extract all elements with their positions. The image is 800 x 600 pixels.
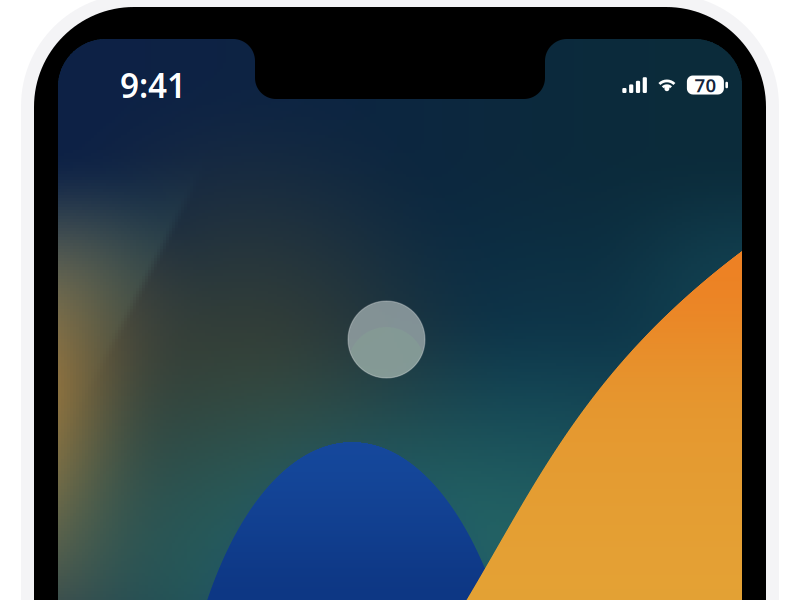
staticText: 70 xyxy=(694,73,716,97)
staticText: 9:41 xyxy=(120,63,186,107)
